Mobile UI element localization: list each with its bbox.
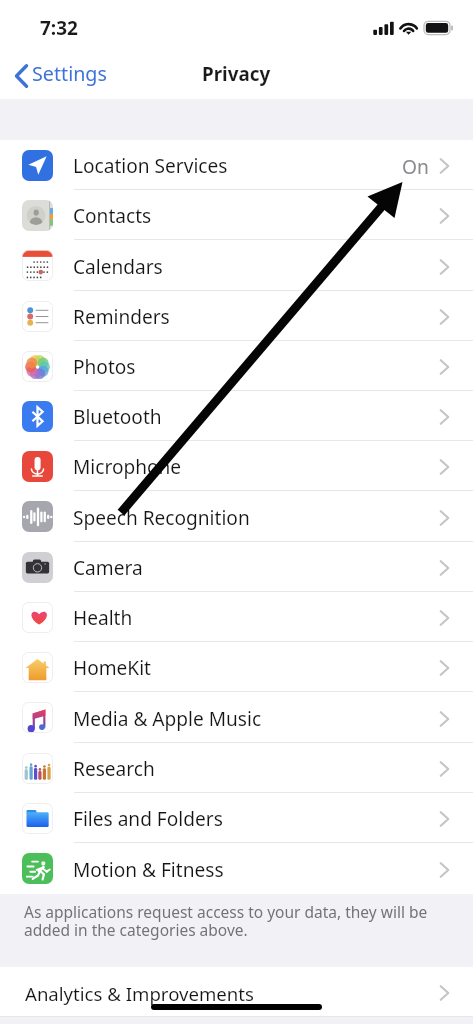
staticText: Media & Apple Music <box>73 706 262 732</box>
button[interactable]: Analytics & Improvements <box>0 967 473 1017</box>
button[interactable]: Files and Folders <box>0 793 473 843</box>
button[interactable]: Photos <box>0 341 473 391</box>
staticText: Reminders <box>73 304 170 330</box>
staticText: Photos <box>73 354 136 380</box>
button[interactable]: Bluetooth <box>0 391 473 441</box>
button[interactable]: Microphone <box>0 441 473 491</box>
staticText: Settings <box>32 60 107 87</box>
staticText: On <box>402 153 429 179</box>
staticText: Calendars <box>73 254 163 280</box>
staticText: Location Services <box>73 153 228 179</box>
button[interactable]: Camera <box>0 542 473 592</box>
staticText: Speech Recognition <box>73 505 250 531</box>
button[interactable]: Motion & Fitness <box>0 843 473 894</box>
button[interactable]: Calendars <box>0 240 473 291</box>
button[interactable]: Media & Apple Music <box>0 692 473 743</box>
staticText: Motion & Fitness <box>73 857 224 883</box>
button[interactable]: Location Services <box>0 140 473 190</box>
staticText: Contacts <box>73 203 152 229</box>
staticText: HomeKit <box>73 655 151 681</box>
staticText: Health <box>73 605 133 631</box>
staticText: Camera <box>73 555 143 581</box>
button[interactable]: Health <box>0 592 473 642</box>
staticText: Bluetooth <box>73 404 162 430</box>
staticText: As applications request access to your d… <box>24 904 438 940</box>
button[interactable]: Contacts <box>0 190 473 240</box>
button[interactable]: HomeKit <box>0 642 473 692</box>
staticText: Files and Folders <box>73 806 223 832</box>
button[interactable]: Speech Recognition <box>0 491 473 542</box>
other: Annotation arrow <box>0 0 473 1024</box>
staticText: 7:32 <box>40 15 78 41</box>
button[interactable]: Research <box>0 743 473 793</box>
staticText: Privacy <box>202 61 271 87</box>
button[interactable]: Settings <box>0 58 115 93</box>
button[interactable]: Reminders <box>0 291 473 341</box>
staticText: Research <box>73 756 155 782</box>
staticText: Analytics & Improvements <box>25 981 254 1006</box>
staticText: Microphone <box>73 454 182 480</box>
